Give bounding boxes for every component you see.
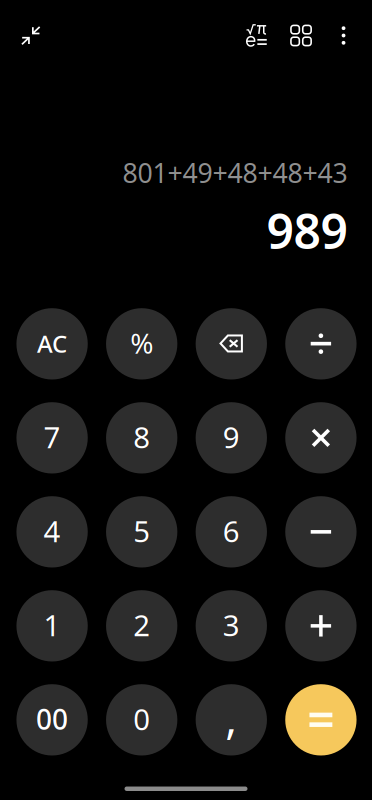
button[interactable]: Backspace <box>196 308 267 379</box>
staticText: % <box>130 324 153 361</box>
staticText: 801+49+48+48+43 <box>123 155 348 190</box>
button[interactable]: Keypad layout <box>291 25 312 46</box>
button[interactable]: 1 <box>16 590 88 661</box>
button[interactable]: Add <box>285 590 356 661</box>
button[interactable]: Subtract <box>285 496 356 567</box>
staticText: 9 <box>223 417 240 456</box>
staticText: AC <box>37 327 67 359</box>
staticText: 0 <box>133 699 150 738</box>
staticText: 2 <box>133 605 150 644</box>
button[interactable]: Exit full screen <box>15 22 44 49</box>
staticText: 6 <box>223 511 240 550</box>
button[interactable]: 7 <box>16 402 88 473</box>
staticText: 989 <box>267 198 348 262</box>
staticText: , <box>225 688 237 746</box>
button[interactable]: 3 <box>196 590 267 661</box>
button[interactable]: All clear <box>16 308 88 379</box>
staticText: 8 <box>133 417 150 456</box>
button[interactable]: 4 <box>16 496 88 567</box>
button[interactable]: Decimal separator <box>196 684 267 755</box>
button[interactable]: Divide <box>285 308 356 379</box>
staticText: 5 <box>133 511 150 550</box>
button[interactable]: 5 <box>106 496 177 567</box>
button[interactable]: More options <box>335 25 353 46</box>
button[interactable]: Double zero <box>16 684 88 755</box>
staticText: 7 <box>44 417 61 456</box>
button[interactable]: 0 <box>106 684 177 755</box>
button[interactable]: 6 <box>196 496 267 567</box>
staticText: 4 <box>44 511 61 550</box>
button[interactable]: 9 <box>196 402 267 473</box>
button[interactable]: 2 <box>106 590 177 661</box>
button[interactable]: Scientific calculator <box>246 23 268 47</box>
button[interactable]: Equals <box>285 684 356 755</box>
button[interactable]: Percent <box>106 308 177 379</box>
staticText: 1 <box>44 605 61 644</box>
button[interactable]: Multiply <box>285 402 356 473</box>
staticText: 3 <box>223 605 240 644</box>
staticText: 00 <box>36 700 68 737</box>
button[interactable]: 8 <box>106 402 177 473</box>
